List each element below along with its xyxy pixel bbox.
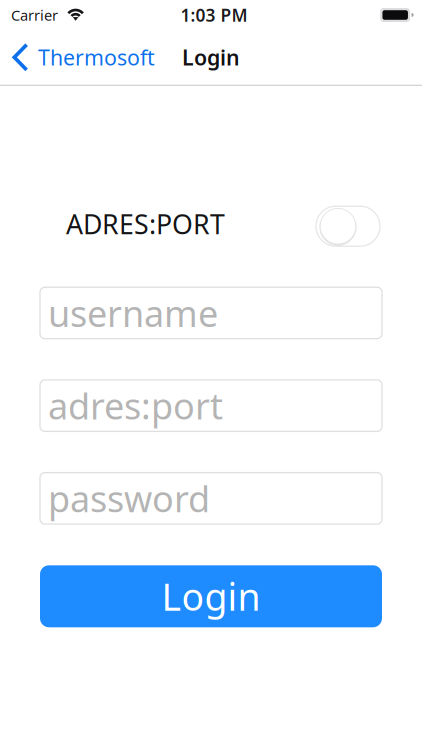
button[interactable]: username [40, 287, 382, 339]
staticText: Thermosoft [38, 43, 155, 71]
button[interactable]: Login [40, 565, 382, 627]
button[interactable]: Thermosoft [0, 35, 163, 80]
staticText: Login [182, 43, 240, 71]
staticText: Login [161, 571, 260, 621]
staticText: ADRES:PORT [66, 206, 225, 242]
staticText: password [48, 474, 210, 522]
staticText: Carrier [11, 5, 58, 25]
button[interactable]: password [40, 473, 382, 524]
button[interactable]: Use address and port [316, 206, 380, 246]
staticText: username [48, 289, 218, 337]
staticText: adres:port [48, 382, 223, 429]
staticText: 1:03 PM [180, 3, 247, 26]
button[interactable]: adres:port [40, 380, 382, 431]
